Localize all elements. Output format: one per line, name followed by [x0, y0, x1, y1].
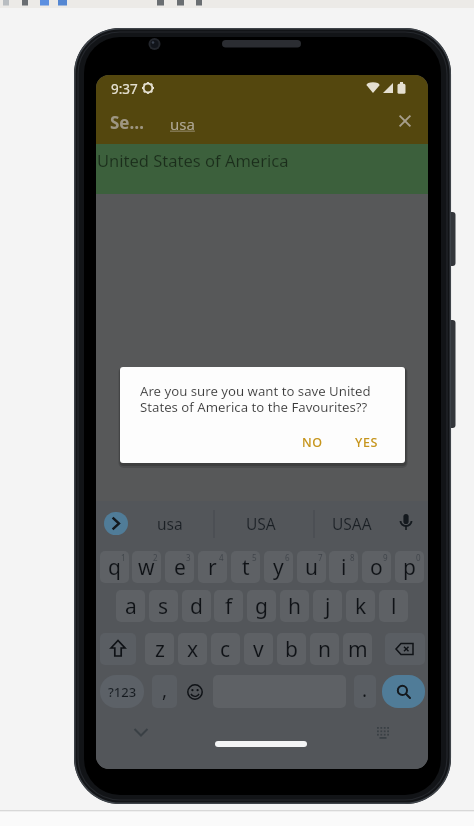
- staticText: ?123: [108, 683, 137, 701]
- staticText: 6: [285, 552, 290, 563]
- button[interactable]: [104, 512, 128, 535]
- staticText: 9:37: [111, 80, 138, 98]
- staticText: x: [187, 635, 199, 664]
- button[interactable]: u: [297, 551, 326, 583]
- button[interactable]: s: [149, 590, 178, 622]
- staticText: g: [255, 592, 268, 621]
- staticText: k: [355, 592, 367, 621]
- staticText: t: [242, 553, 250, 582]
- button[interactable]: f: [214, 590, 243, 622]
- staticText: 7: [318, 552, 323, 563]
- button[interactable]: m: [343, 633, 372, 665]
- button[interactable]: a: [116, 590, 145, 622]
- button[interactable]: n: [310, 633, 339, 665]
- button[interactable]: l: [379, 590, 408, 622]
- staticText: j: [325, 592, 331, 621]
- staticText: w: [138, 553, 155, 582]
- staticText: USAA: [332, 513, 372, 534]
- staticText: h: [288, 592, 301, 621]
- button[interactable]: o: [362, 551, 391, 583]
- button[interactable]: p: [395, 551, 424, 583]
- button[interactable]: k: [346, 590, 375, 622]
- staticText: NO: [302, 434, 323, 451]
- staticText: u: [305, 553, 318, 582]
- staticText: Se…: [110, 111, 145, 134]
- staticText: usa: [170, 114, 195, 134]
- button[interactable]: v: [244, 633, 273, 665]
- staticText: s: [158, 592, 169, 621]
- button[interactable]: i: [329, 551, 358, 583]
- staticText: e: [174, 553, 186, 582]
- button[interactable]: [392, 106, 422, 136]
- staticText: l: [391, 592, 397, 621]
- staticText: a: [125, 592, 137, 621]
- button[interactable]: ,: [152, 675, 177, 708]
- staticText: 1: [121, 552, 126, 563]
- staticText: n: [318, 635, 331, 664]
- button[interactable]: h: [280, 590, 309, 622]
- staticText: .: [362, 677, 368, 703]
- button[interactable]: ?123: [100, 675, 144, 708]
- staticText: 4: [219, 552, 224, 563]
- staticText: b: [285, 635, 298, 664]
- staticText: 8: [350, 552, 355, 563]
- button[interactable]: g: [247, 590, 276, 622]
- button[interactable]: NO: [292, 427, 332, 457]
- button[interactable]: j: [313, 590, 342, 622]
- button[interactable]: t: [231, 551, 260, 583]
- button[interactable]: [382, 675, 425, 708]
- staticText: c: [220, 635, 231, 664]
- button[interactable]: [368, 718, 398, 746]
- staticText: 9: [383, 552, 388, 563]
- staticText: YES: [355, 434, 378, 451]
- staticText: v: [253, 635, 264, 664]
- staticText: d: [190, 592, 203, 621]
- button[interactable]: e: [165, 551, 194, 583]
- button[interactable]: YES: [344, 427, 388, 457]
- staticText: United States of America: [97, 149, 289, 171]
- staticText: 3: [186, 552, 191, 563]
- button[interactable]: United States of America: [96, 144, 428, 194]
- button[interactable]: [385, 633, 425, 665]
- button[interactable]: r: [198, 551, 227, 583]
- staticText: q: [108, 553, 121, 582]
- button[interactable]: usa: [140, 505, 200, 541]
- staticText: 0: [416, 552, 421, 563]
- staticText: 5: [252, 552, 257, 563]
- staticText: usa: [157, 513, 183, 534]
- button[interactable]: b: [277, 633, 306, 665]
- button[interactable]: USAA: [322, 505, 382, 541]
- button[interactable]: [388, 507, 424, 541]
- button[interactable]: x: [178, 633, 207, 665]
- staticText: p: [403, 553, 416, 582]
- staticText: 2: [153, 552, 158, 563]
- button[interactable]: [124, 720, 158, 746]
- staticText: Are you sure you want to save United Sta…: [140, 382, 371, 416]
- staticText: USA: [246, 513, 276, 534]
- staticText: f: [225, 592, 233, 621]
- staticText: z: [155, 635, 165, 664]
- staticText: r: [208, 553, 217, 582]
- button[interactable]: .: [354, 675, 376, 708]
- staticText: y: [273, 553, 284, 582]
- button[interactable]: [181, 675, 208, 708]
- button[interactable]: z: [145, 633, 174, 665]
- staticText: i: [341, 553, 347, 582]
- button[interactable]: d: [182, 590, 211, 622]
- button[interactable]: c: [211, 633, 240, 665]
- staticText: ,: [162, 677, 168, 703]
- button[interactable]: q: [100, 551, 129, 583]
- button[interactable]: USA: [231, 505, 291, 541]
- button[interactable]: y: [264, 551, 293, 583]
- staticText: o: [370, 553, 383, 582]
- staticText: m: [348, 635, 368, 664]
- button[interactable]: [100, 633, 136, 665]
- button[interactable]: w: [132, 551, 161, 583]
